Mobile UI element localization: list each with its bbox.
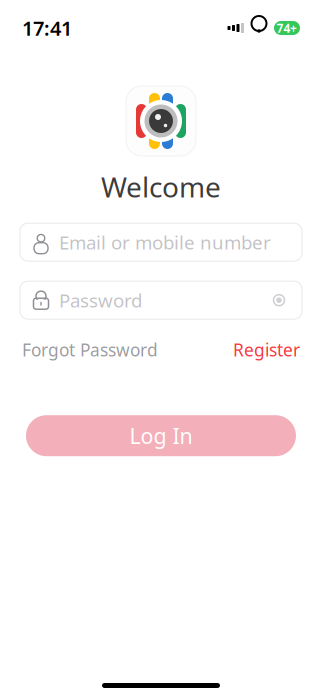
button[interactable]: Forgot Password [22, 333, 158, 366]
staticText: Forgot Password [22, 338, 158, 361]
button[interactable]: Show password [269, 290, 289, 310]
staticText: Email or mobile number [59, 230, 271, 255]
staticText: Password [59, 288, 142, 313]
button[interactable]: Register [233, 333, 300, 366]
button[interactable]: Log In [26, 415, 296, 456]
staticText: + [290, 20, 297, 36]
staticText: Welcome [101, 168, 221, 205]
staticText: 74 [276, 20, 290, 36]
staticText: Register [233, 338, 300, 361]
staticText: Log In [129, 421, 192, 450]
staticText: 17:41 [22, 15, 72, 41]
